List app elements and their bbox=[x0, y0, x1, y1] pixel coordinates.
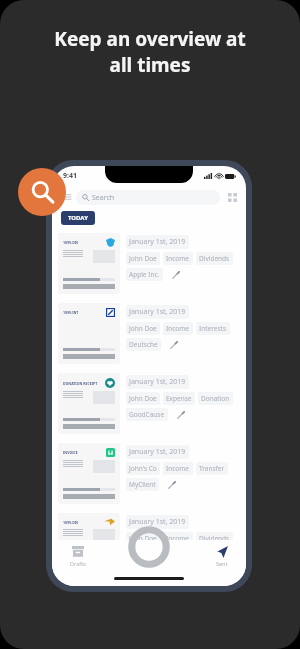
staticText: 1099-INT bbox=[63, 310, 79, 315]
staticText: Interests bbox=[199, 324, 227, 333]
staticText: Income bbox=[166, 534, 190, 543]
staticText: Sent bbox=[216, 560, 228, 567]
button[interactable]: Menu bbox=[59, 190, 73, 204]
button[interactable]: Edit bbox=[166, 479, 177, 490]
button[interactable]: Edit bbox=[170, 269, 181, 280]
button[interactable]: 1099-INT bbox=[52, 300, 246, 370]
staticText: Dividends bbox=[199, 254, 230, 263]
staticText: TODAY bbox=[68, 214, 88, 222]
button[interactable]: Drafts bbox=[68, 544, 88, 569]
staticText: GoodCause bbox=[129, 410, 165, 419]
button[interactable]: Grid view bbox=[225, 190, 239, 204]
button[interactable]: Capture bbox=[128, 526, 170, 568]
staticText: 9:41 bbox=[63, 171, 77, 181]
staticText: John Doe bbox=[129, 254, 157, 263]
staticText: 1099-DIV bbox=[63, 240, 79, 245]
button[interactable]: 1099-DIV bbox=[52, 230, 246, 300]
staticText: January 1st, 2019 bbox=[129, 517, 186, 527]
staticText: Transfer bbox=[199, 464, 225, 473]
staticText: January 1st, 2019 bbox=[129, 377, 186, 387]
staticText: January 1st, 2019 bbox=[129, 307, 186, 317]
staticText: Deutsche bbox=[129, 340, 158, 349]
staticText: MyClient bbox=[129, 480, 156, 489]
staticText: John Doe bbox=[129, 394, 157, 403]
staticText: Apple Inc. bbox=[129, 270, 160, 279]
button[interactable]: TODAY bbox=[61, 211, 95, 225]
staticText: Keep an overview at all times bbox=[14, 26, 286, 77]
staticText: Income bbox=[166, 324, 190, 333]
button[interactable]: Edit bbox=[168, 339, 179, 350]
staticText: John Doe bbox=[129, 324, 157, 333]
staticText: January 1st, 2019 bbox=[129, 237, 186, 247]
staticText: Drafts bbox=[70, 560, 86, 567]
staticText: DONATION RECEIPT bbox=[63, 381, 98, 386]
staticText: 1099-DIV bbox=[63, 520, 79, 525]
staticText: Income bbox=[166, 464, 190, 473]
staticText: John's Co bbox=[129, 464, 157, 473]
button[interactable]: INVOICE bbox=[52, 440, 246, 510]
button[interactable]: DONATION RECEIPT bbox=[52, 370, 246, 440]
staticText: January 1st, 2019 bbox=[129, 447, 186, 457]
staticText: Search bbox=[92, 193, 115, 203]
button[interactable]: Search bbox=[18, 168, 66, 216]
staticText: INVOICE bbox=[63, 450, 78, 455]
button[interactable]: Sent bbox=[214, 544, 230, 569]
staticText: Donation bbox=[201, 394, 230, 403]
staticText: Expense bbox=[166, 394, 192, 403]
button[interactable]: 1099-DIV bbox=[52, 510, 246, 580]
button[interactable]: Edit bbox=[175, 409, 186, 420]
staticText: Dividends bbox=[199, 534, 230, 543]
staticText: Income bbox=[166, 254, 190, 263]
staticText: John Doe bbox=[129, 534, 157, 543]
staticText: Apple Inc. bbox=[129, 550, 160, 559]
button[interactable]: Search bbox=[76, 190, 220, 205]
